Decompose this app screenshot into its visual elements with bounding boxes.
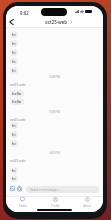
staticText: hi (12, 32, 16, 37)
button[interactable]: Camera (16, 185, 22, 191)
staticText: 4:03 PM (6, 151, 103, 155)
staticText: 3:38 PM (6, 110, 103, 114)
button[interactable]: hi (10, 49, 18, 56)
staticText: oct25-web (10, 159, 26, 163)
staticText: oct25-web (45, 19, 68, 25)
staticText: hi (12, 123, 16, 128)
staticText: Chats (19, 204, 27, 208)
staticText: hello (12, 91, 22, 96)
button[interactable]: About (71, 196, 103, 212)
staticText: hi (12, 59, 16, 64)
button[interactable]: hi (10, 122, 18, 129)
staticText: hi (12, 50, 16, 55)
button[interactable]: hi (10, 175, 18, 182)
button[interactable]: hi (10, 31, 18, 38)
button[interactable]: hi (10, 131, 18, 138)
staticText: 3:38 PM (6, 75, 103, 79)
button[interactable]: Add photo (9, 185, 15, 191)
staticText: hi (12, 168, 16, 173)
staticText: Profile (51, 204, 60, 208)
staticText: hi (12, 41, 16, 46)
button[interactable]: hi (10, 67, 18, 74)
staticText: Send a message... (30, 187, 60, 192)
staticText: hi (12, 141, 16, 146)
button[interactable]: hi (10, 140, 18, 147)
button[interactable]: Send a message... (26, 186, 99, 193)
button[interactable]: Back (7, 16, 15, 28)
staticText: About (83, 204, 92, 208)
button[interactable]: Profile (39, 196, 71, 212)
button[interactable]: hi (10, 167, 18, 174)
staticText: hi (12, 68, 16, 73)
button[interactable]: hi (10, 40, 18, 47)
button[interactable]: hello (10, 98, 24, 105)
button[interactable]: hello (10, 90, 24, 97)
button[interactable]: oct25-web (45, 16, 72, 28)
button[interactable]: hi (10, 58, 18, 65)
staticText: hi (12, 132, 16, 137)
staticText: hello (12, 99, 22, 104)
staticText: hi (12, 176, 16, 181)
staticText: oct25-web (10, 118, 26, 122)
staticText: oct25-web (10, 83, 26, 87)
button[interactable]: Chats (6, 196, 39, 212)
staticText: 9:02 (20, 10, 29, 16)
